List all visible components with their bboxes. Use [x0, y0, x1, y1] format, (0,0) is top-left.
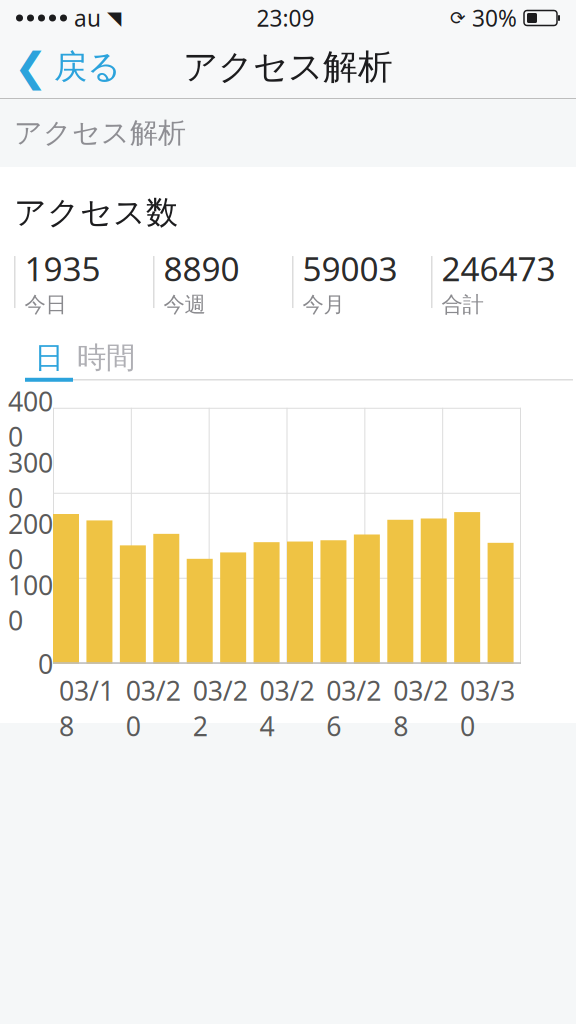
staticText: 03/24: [259, 673, 314, 744]
staticText: 03/18: [59, 673, 114, 744]
button[interactable]: ❮: [0, 36, 135, 98]
button[interactable]: 時間: [73, 338, 139, 378]
staticText: 4000: [8, 383, 53, 454]
staticText: 03/30: [460, 673, 515, 744]
staticText: 今日: [24, 292, 66, 318]
staticText: 03/26: [326, 673, 381, 744]
staticText: 03/28: [393, 673, 448, 744]
staticText: 今週: [163, 292, 205, 318]
staticText: 03/22: [193, 673, 248, 744]
staticText: 30%: [472, 3, 517, 33]
staticText: 2000: [8, 506, 53, 577]
staticText: ⟳: [450, 7, 466, 29]
staticText: 今月: [302, 292, 344, 318]
staticText: 合計: [441, 292, 483, 318]
staticText: 1935: [24, 246, 100, 291]
staticText: 03/20: [126, 673, 181, 744]
staticText: 3000: [8, 445, 53, 515]
staticText: アクセス数: [14, 193, 178, 232]
staticText: ◥: [107, 7, 121, 29]
staticText: 戻る: [54, 46, 121, 87]
staticText: 59003: [302, 246, 397, 291]
staticText: 246473: [441, 246, 555, 291]
staticText: 8890: [163, 246, 239, 291]
staticText: 1000: [8, 567, 53, 638]
staticText: アクセス解析: [14, 116, 186, 150]
staticText: au: [74, 3, 101, 33]
staticText: アクセス解析: [183, 46, 393, 88]
staticText: ❮: [14, 44, 48, 90]
button[interactable]: 日: [25, 338, 73, 378]
staticText: 時間: [77, 340, 135, 376]
staticText: 日: [34, 340, 63, 376]
staticText: 0: [38, 646, 53, 681]
staticText: 23:09: [256, 3, 314, 33]
